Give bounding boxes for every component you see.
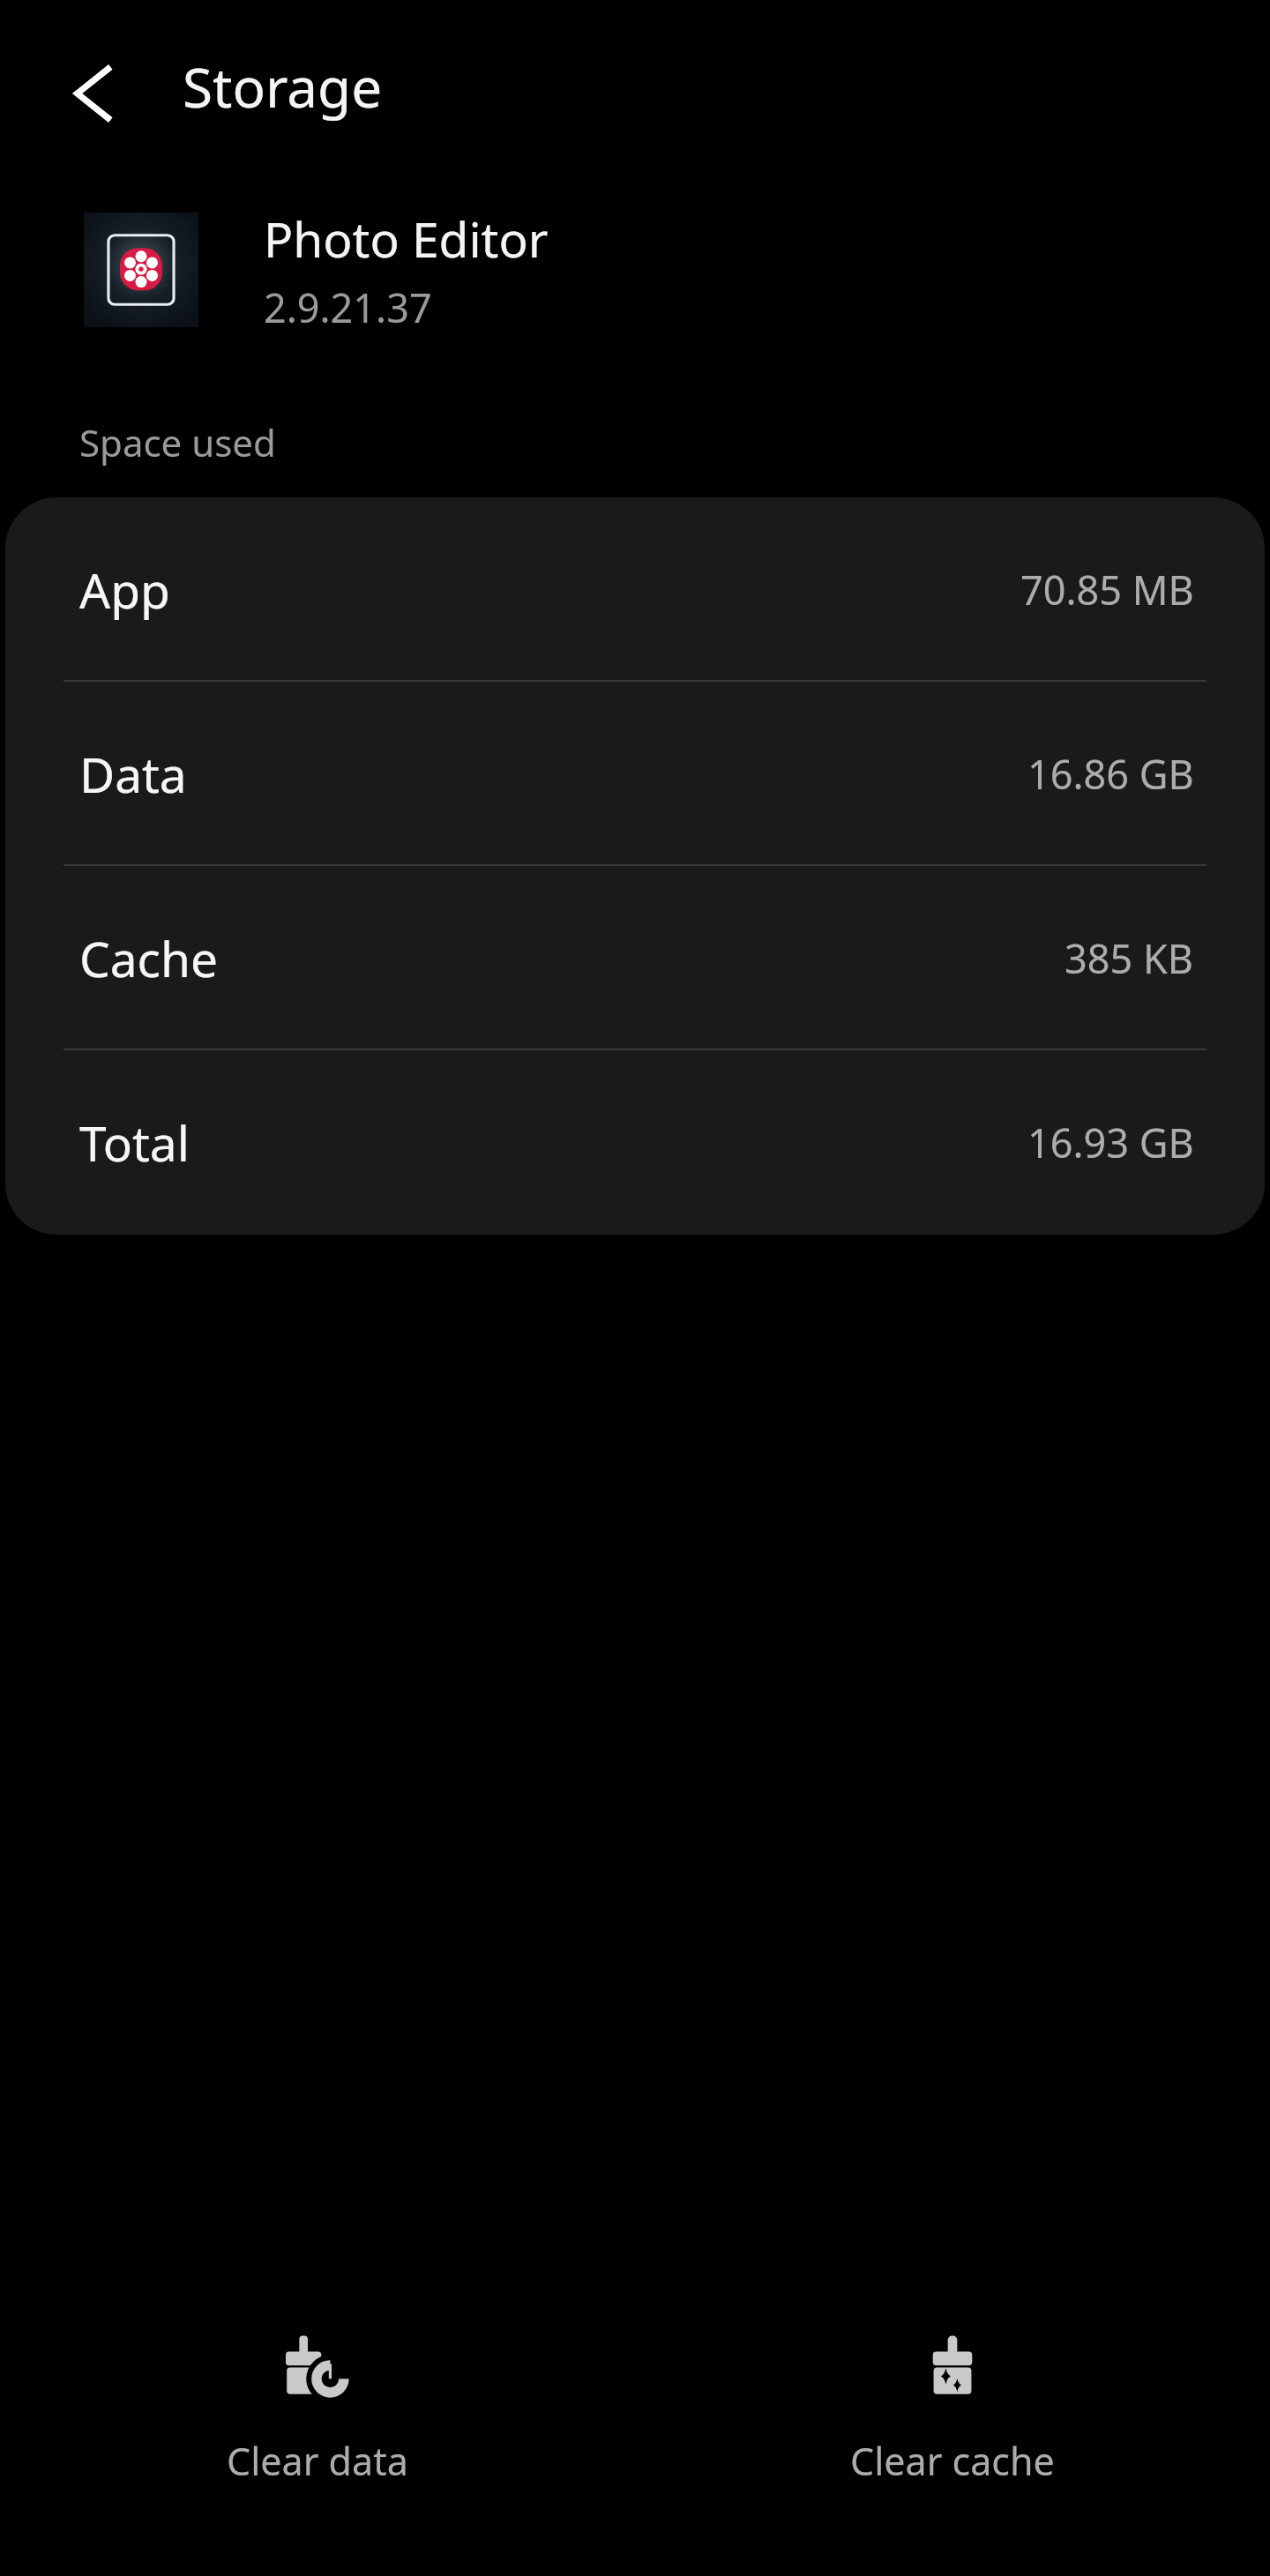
button[interactable]: Clear cache [635,2311,1270,2576]
staticText: 16.86 GB [1027,747,1194,801]
staticText: Clear data [227,2435,408,2487]
button[interactable]: App [5,497,1265,682]
staticText: App [79,556,170,623]
staticText: 70.85 MB [1020,563,1194,616]
staticText: Photo Editor [264,205,549,272]
staticText: 16.93 GB [1027,1116,1194,1169]
button[interactable]: Clear data [0,2311,635,2576]
button[interactable]: Cache [5,866,1265,1050]
other: Clear cache [921,2334,984,2398]
button[interactable]: Data [5,682,1265,866]
staticText: Storage [183,49,383,123]
staticText: 2.9.21.37 [264,280,432,334]
staticText: Total [79,1109,190,1176]
staticText: Clear cache [850,2435,1055,2487]
staticText: 385 KB [1065,931,1194,985]
staticText: Cache [79,925,219,991]
other: Clear data [286,2334,349,2398]
button[interactable]: Total [5,1050,1265,1235]
button[interactable]: Navigate up [44,41,150,146]
staticText: Space used [79,417,276,467]
staticText: Data [79,741,187,807]
